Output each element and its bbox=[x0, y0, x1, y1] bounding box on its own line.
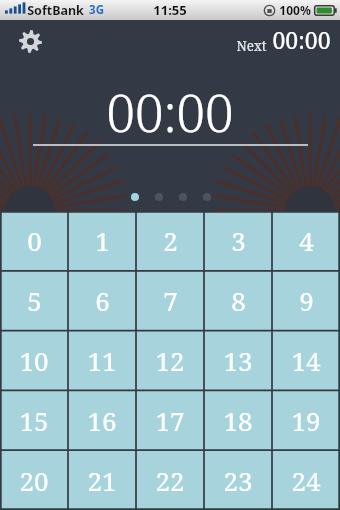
button[interactable]: 12 bbox=[136, 330, 204, 390]
button[interactable]: 0 bbox=[0, 211, 68, 270]
staticText: 9 bbox=[299, 283, 314, 318]
staticText: 2 bbox=[163, 223, 178, 258]
staticText: SoftBank bbox=[27, 2, 84, 19]
button[interactable]: 15 bbox=[0, 390, 68, 450]
button[interactable]: 9 bbox=[272, 270, 340, 330]
button[interactable]: Settings bbox=[15, 26, 45, 56]
staticText: 7 bbox=[163, 283, 178, 318]
staticText: 00:00 bbox=[106, 77, 234, 146]
staticText: 18 bbox=[223, 403, 253, 438]
staticText: 8 bbox=[231, 283, 246, 318]
button[interactable]: 3 bbox=[204, 211, 272, 270]
button[interactable]: 11 bbox=[68, 330, 136, 390]
button[interactable]: 7 bbox=[136, 270, 204, 330]
staticText: 22 bbox=[155, 463, 185, 498]
staticText: 23 bbox=[223, 463, 253, 498]
button[interactable]: 10 bbox=[0, 330, 68, 390]
staticText: 1 bbox=[95, 223, 110, 258]
button[interactable]: 4 bbox=[272, 211, 340, 270]
staticText: 3G bbox=[89, 2, 104, 18]
staticText: 24 bbox=[291, 463, 321, 498]
staticText: 3 bbox=[231, 223, 246, 258]
button[interactable]: 20 bbox=[0, 450, 68, 510]
staticText: 10 bbox=[19, 343, 49, 378]
button[interactable]: 19 bbox=[272, 390, 340, 450]
button[interactable]: Next bbox=[236, 24, 331, 55]
staticText: 16 bbox=[87, 403, 117, 438]
button[interactable]: 23 bbox=[204, 450, 272, 510]
staticText: 15 bbox=[19, 403, 49, 438]
button[interactable]: 24 bbox=[272, 450, 340, 510]
button[interactable]: 6 bbox=[68, 270, 136, 330]
staticText: 14 bbox=[291, 343, 321, 378]
staticText: 20 bbox=[19, 463, 49, 498]
staticText: Next bbox=[236, 37, 267, 55]
staticText: 19 bbox=[291, 403, 321, 438]
staticText: 5 bbox=[27, 283, 42, 318]
staticText: 4 bbox=[299, 223, 314, 258]
button[interactable]: 16 bbox=[68, 390, 136, 450]
button[interactable]: 2 bbox=[136, 211, 204, 270]
staticText: 6 bbox=[95, 283, 110, 318]
button[interactable]: 22 bbox=[136, 450, 204, 510]
staticText: 11:55 bbox=[153, 1, 187, 19]
staticText: 17 bbox=[155, 403, 185, 438]
staticText: 11 bbox=[87, 343, 117, 378]
button[interactable]: 1 bbox=[68, 211, 136, 270]
staticText: 0 bbox=[27, 223, 42, 258]
staticText: 00:00 bbox=[272, 24, 331, 55]
button[interactable]: 13 bbox=[204, 330, 272, 390]
staticText: 13 bbox=[223, 343, 253, 378]
staticText: 21 bbox=[87, 463, 117, 498]
button[interactable]: 8 bbox=[204, 270, 272, 330]
button[interactable]: 5 bbox=[0, 270, 68, 330]
staticText: 100% bbox=[279, 2, 311, 18]
button[interactable]: 18 bbox=[204, 390, 272, 450]
button[interactable]: 21 bbox=[68, 450, 136, 510]
button[interactable]: 17 bbox=[136, 390, 204, 450]
staticText: 12 bbox=[155, 343, 185, 378]
button[interactable]: 14 bbox=[272, 330, 340, 390]
